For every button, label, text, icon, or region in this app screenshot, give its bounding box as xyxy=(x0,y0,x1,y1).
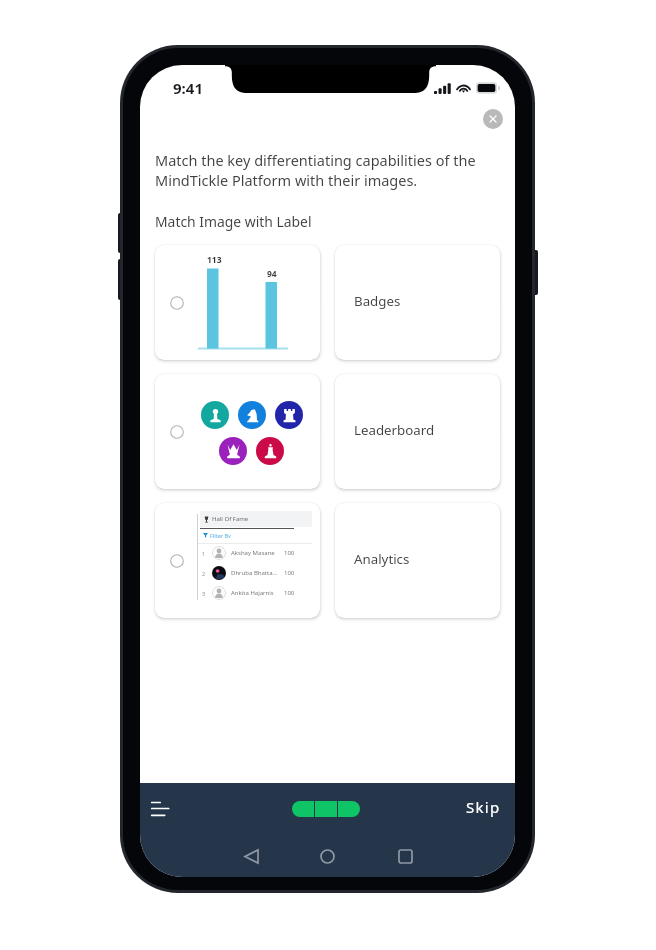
staticText: Skip xyxy=(466,797,501,817)
button[interactable]: Recents xyxy=(391,842,419,870)
staticText: Badges xyxy=(354,292,401,310)
button[interactable]: Badges xyxy=(335,245,500,360)
staticText: 1 xyxy=(202,550,206,557)
staticText: Filter By xyxy=(210,532,231,538)
staticText: 2 xyxy=(202,570,206,577)
staticText: Match the key differentiating capabiliti… xyxy=(155,150,504,190)
button[interactable]: Back xyxy=(237,842,265,870)
button[interactable]: Home xyxy=(313,842,341,870)
staticText: 100 xyxy=(284,569,295,577)
staticText: Match Image with Label xyxy=(155,212,312,231)
button[interactable]: Menu xyxy=(146,794,170,818)
button[interactable] xyxy=(155,374,320,489)
staticText: Dhruba Bhatta... xyxy=(231,569,278,577)
button[interactable]: Analytics xyxy=(335,503,500,618)
staticText: Ankita Hajarnis xyxy=(231,589,274,597)
staticText: 100 xyxy=(284,589,295,597)
staticText: Akshay Masane xyxy=(231,549,275,557)
staticText: Leaderboard xyxy=(354,421,435,439)
staticText: Analytics xyxy=(354,550,410,568)
button[interactable]: Skip xyxy=(458,795,509,819)
staticText: 3 xyxy=(202,590,206,597)
button[interactable]: 113 xyxy=(155,245,320,360)
staticText: 9:41 xyxy=(173,78,203,98)
button[interactable]: Close xyxy=(483,109,503,129)
staticText: 100 xyxy=(284,549,295,557)
staticText: Hall Of Fame xyxy=(212,515,249,523)
button[interactable]: Leaderboard xyxy=(335,374,500,489)
button[interactable]: Hall Of Fame xyxy=(155,503,320,618)
staticText: 94 xyxy=(267,268,277,280)
staticText: 113 xyxy=(207,254,222,266)
